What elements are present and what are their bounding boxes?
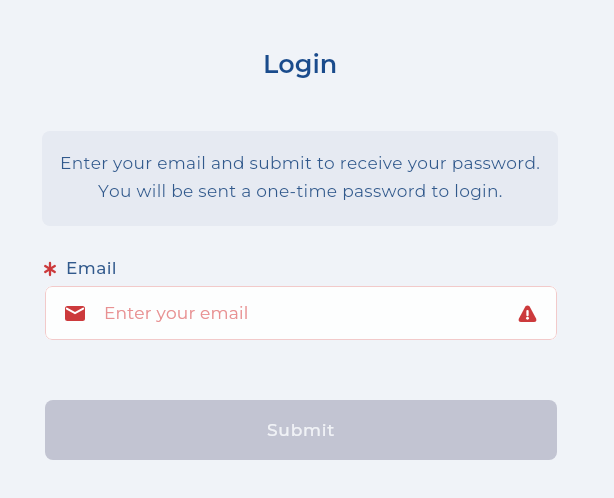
staticText: You will be sent a one-time password to … bbox=[98, 181, 503, 202]
staticText: Submit bbox=[267, 420, 336, 441]
staticText: Enter your email and submit to receive y… bbox=[60, 153, 541, 174]
staticText: Enter your email bbox=[104, 303, 249, 324]
staticText: Email bbox=[66, 258, 118, 279]
button[interactable]: Enter your email bbox=[45, 286, 557, 340]
staticText: Login bbox=[263, 48, 338, 79]
button[interactable]: Submit bbox=[45, 400, 557, 460]
